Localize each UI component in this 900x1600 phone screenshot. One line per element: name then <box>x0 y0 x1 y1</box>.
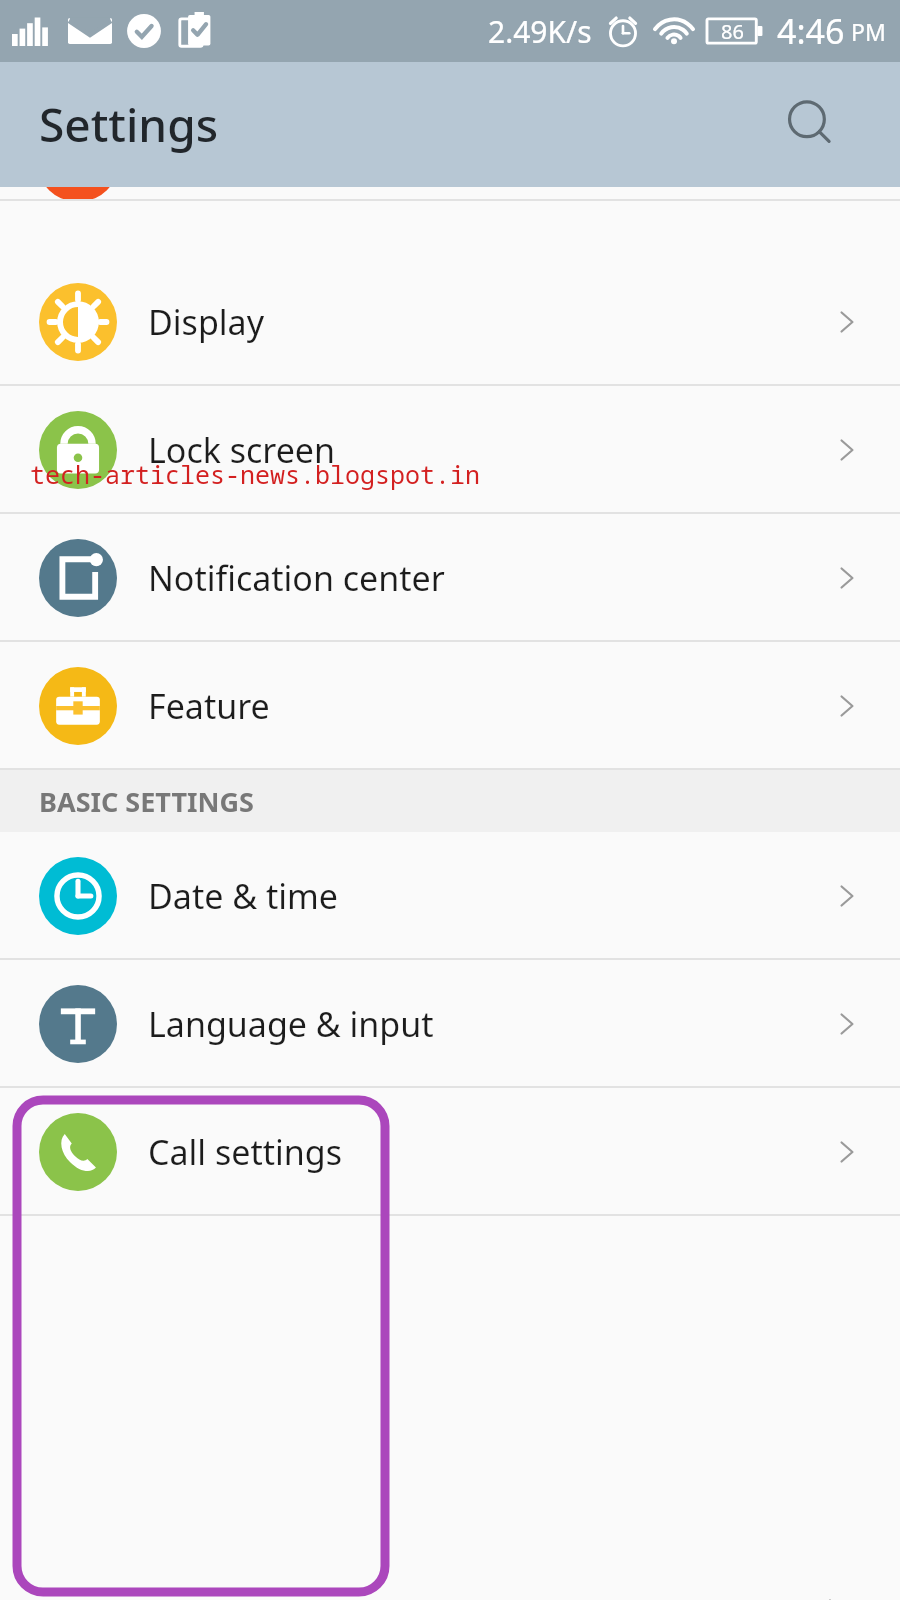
button[interactable]: Display <box>0 258 900 386</box>
staticText: Call settings <box>148 1129 342 1175</box>
staticText: Display <box>148 299 264 345</box>
staticText: 86 <box>721 18 744 45</box>
staticText: Language & input <box>148 1001 434 1047</box>
staticText: Feature <box>148 683 270 729</box>
button[interactable]: Language & input <box>0 960 900 1088</box>
button[interactable]: Date & time <box>0 832 900 960</box>
staticText: PM <box>851 16 886 47</box>
staticText: 2.49K/s <box>488 11 592 52</box>
staticText: Settings <box>39 93 219 156</box>
staticText: Lock screen <box>148 427 336 473</box>
button[interactable]: Ringtones and volumes <box>0 187 900 201</box>
staticText: Date & time <box>148 873 338 919</box>
button[interactable]: Feature <box>0 642 900 770</box>
button[interactable]: Lock screen <box>0 386 900 514</box>
button[interactable]: Call settings <box>0 1088 900 1216</box>
button[interactable]: Notification center <box>0 514 900 642</box>
staticText: tech-articles-news.blogspot.in <box>30 457 481 491</box>
staticText: BASIC SETTINGS <box>39 783 254 820</box>
button[interactable]: Search <box>780 94 842 156</box>
staticText: 4:46 <box>777 8 845 54</box>
staticText: Notification center <box>148 555 445 601</box>
